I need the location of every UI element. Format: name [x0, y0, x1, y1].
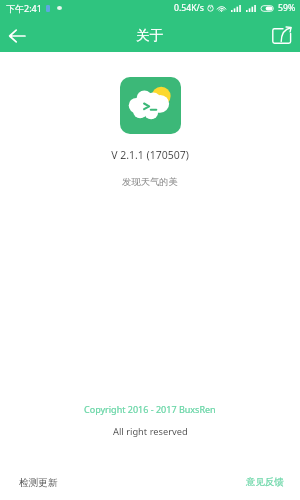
staticText: All right reserved [113, 425, 188, 438]
staticText: Copyright 2016 - 2017 BuxsRen [84, 403, 216, 415]
button[interactable]: Share [264, 17, 300, 52]
button[interactable]: 检测更新 [0, 464, 150, 500]
staticText: 发现天气的美 [122, 176, 178, 188]
staticText: 检测更新 [19, 477, 58, 489]
staticText: 0.54K/s [174, 2, 205, 14]
button[interactable]: Back [0, 17, 34, 52]
staticText: 关于 [136, 27, 164, 44]
staticText: 59% [278, 2, 296, 14]
staticText: 下午2:41 [6, 2, 42, 14]
staticText: V 2.1.1 (170507) [111, 148, 189, 162]
staticText: 意见反馈 [246, 476, 284, 488]
button[interactable]: 意见反馈 [150, 464, 300, 500]
